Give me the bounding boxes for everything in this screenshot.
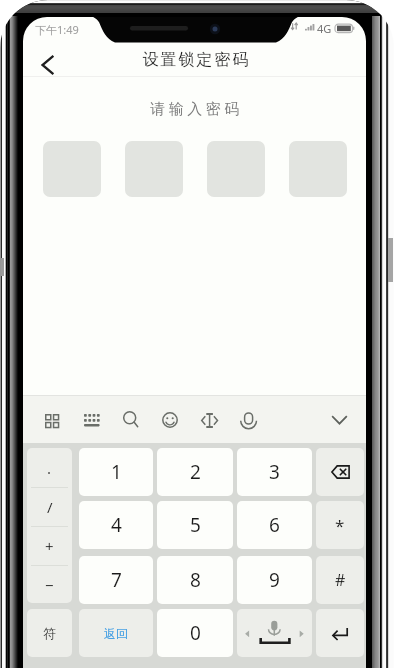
button[interactable]: Emoji [155, 405, 185, 435]
staticText: * [335, 514, 345, 537]
button[interactable]: Space [237, 609, 312, 657]
button[interactable]: 0 [157, 609, 233, 657]
staticText: 7 [111, 567, 122, 593]
button[interactable]: 1 [79, 448, 153, 496]
button[interactable]: Voice input [233, 405, 263, 435]
staticText: 6 [269, 512, 280, 538]
staticText: 下午1:49 [35, 22, 79, 37]
staticText: . [47, 458, 52, 478]
button[interactable]: / [27, 487, 72, 526]
button[interactable]: 2 [157, 448, 233, 496]
button[interactable]: 返回 [79, 609, 153, 657]
staticText: 2 [190, 459, 201, 485]
button[interactable]: Back [27, 47, 67, 83]
button[interactable]: − [27, 565, 72, 603]
staticText: − [45, 575, 54, 595]
staticText: 返回 [104, 626, 128, 641]
button[interactable]: Search [115, 405, 145, 435]
staticText: 5 [190, 512, 201, 538]
staticText: 0 [190, 620, 201, 646]
staticText: 8 [190, 567, 201, 593]
button[interactable]: + [27, 526, 72, 565]
button[interactable]: Symbols [36, 405, 66, 435]
staticText: 3 [269, 459, 280, 485]
button[interactable]: Backspace [316, 448, 364, 496]
button[interactable]: Keyboard [77, 405, 107, 435]
button[interactable]: . [27, 448, 72, 487]
button[interactable]: 7 [79, 556, 153, 604]
button[interactable]: Move cursor [194, 405, 224, 435]
button[interactable]: * [316, 501, 364, 549]
staticText: 4G [317, 21, 332, 36]
staticText: 请输入密码 [25, 100, 366, 119]
button[interactable]: 9 [237, 556, 312, 604]
staticText: 9 [269, 567, 280, 593]
button[interactable]: 4 [79, 501, 153, 549]
staticText: 4 [111, 512, 122, 538]
button[interactable]: Enter [316, 609, 364, 657]
button[interactable]: # [316, 556, 364, 604]
staticText: 1 [111, 459, 122, 485]
staticText: 设置锁定密码 [25, 50, 366, 70]
staticText: / [47, 497, 53, 517]
button[interactable]: 符 [27, 609, 72, 657]
staticText: 符 [43, 625, 56, 641]
button[interactable]: 6 [237, 501, 312, 549]
staticText: # [335, 569, 346, 591]
staticText: + [45, 536, 54, 556]
button[interactable]: Hide keyboard [324, 405, 354, 435]
button[interactable]: 3 [237, 448, 312, 496]
button[interactable]: 5 [157, 501, 233, 549]
button[interactable]: 8 [157, 556, 233, 604]
